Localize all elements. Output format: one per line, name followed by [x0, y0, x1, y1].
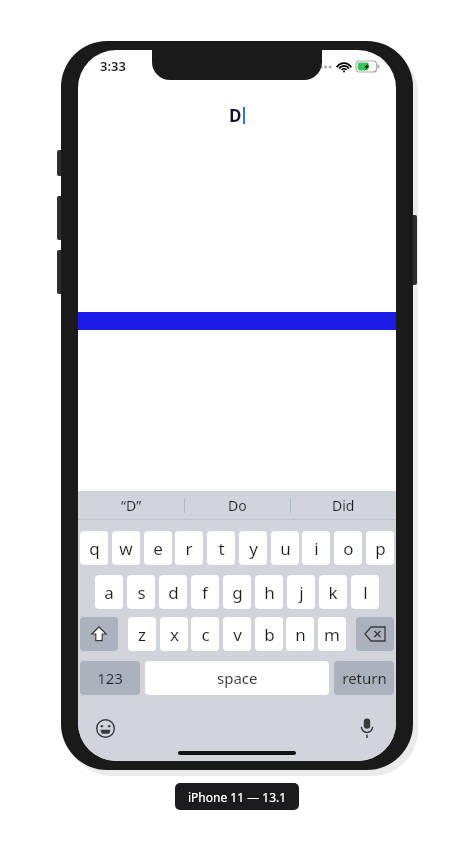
button[interactable]: y — [239, 531, 267, 565]
button[interactable]: m — [318, 617, 346, 651]
staticText: q — [89, 537, 100, 560]
button[interactable]: u — [271, 531, 299, 565]
staticText: space — [217, 668, 258, 688]
staticText: c — [201, 623, 210, 646]
button[interactable]: i — [302, 531, 330, 565]
button[interactable]: Dictation — [352, 713, 382, 743]
staticText: return — [342, 668, 387, 688]
staticText: v — [233, 623, 242, 646]
staticText: 123 — [97, 668, 123, 688]
button[interactable]: o — [334, 531, 362, 565]
staticText: x — [170, 623, 179, 646]
button[interactable]: Emoji — [90, 713, 120, 743]
button[interactable]: Did — [291, 491, 396, 520]
staticText: i — [314, 537, 319, 560]
button[interactable]: Do — [185, 491, 290, 520]
staticText: r — [185, 537, 193, 560]
staticText: k — [328, 581, 338, 604]
button[interactable]: x — [160, 617, 188, 651]
button[interactable]: “D” — [78, 491, 184, 520]
button[interactable]: a — [95, 575, 123, 609]
button[interactable]: g — [223, 575, 251, 609]
staticText: “D” — [121, 496, 142, 515]
button[interactable]: d — [159, 575, 187, 609]
staticText: n — [295, 623, 306, 646]
staticText: m — [324, 623, 340, 646]
staticText: iPhone 11 — 13.1 — [188, 789, 287, 805]
button[interactable]: s — [127, 575, 155, 609]
button[interactable]: b — [255, 617, 283, 651]
button[interactable]: space — [145, 661, 329, 695]
button[interactable]: Shift — [80, 617, 118, 651]
staticText: f — [202, 581, 208, 604]
button[interactable]: f — [191, 575, 219, 609]
button[interactable]: p — [366, 531, 394, 565]
staticText: e — [153, 537, 163, 560]
staticText: Do — [228, 496, 247, 515]
staticText: s — [137, 581, 146, 604]
button[interactable]: l — [351, 575, 379, 609]
staticText: u — [280, 537, 291, 560]
button[interactable]: z — [128, 617, 156, 651]
staticText: l — [363, 581, 368, 604]
staticText: a — [104, 581, 114, 604]
button[interactable]: h — [255, 575, 283, 609]
button[interactable]: 123 — [80, 661, 140, 695]
button[interactable]: n — [286, 617, 314, 651]
button[interactable]: Delete — [356, 617, 394, 651]
staticText: w — [119, 537, 133, 560]
button[interactable]: t — [207, 531, 235, 565]
staticText: z — [138, 623, 146, 646]
button[interactable]: return — [334, 661, 394, 695]
staticText: 3:33 — [100, 57, 126, 75]
staticText: D — [229, 104, 242, 127]
button[interactable]: k — [319, 575, 347, 609]
button[interactable]: r — [175, 531, 203, 565]
button[interactable]: j — [287, 575, 315, 609]
staticText: b — [264, 623, 275, 646]
staticText: d — [168, 581, 179, 604]
staticText: t — [218, 537, 225, 560]
staticText: p — [375, 537, 386, 560]
button[interactable]: v — [223, 617, 251, 651]
staticText: h — [264, 581, 275, 604]
button[interactable]: e — [144, 531, 172, 565]
button[interactable]: c — [191, 617, 219, 651]
staticText: y — [249, 537, 258, 560]
staticText: o — [343, 537, 354, 560]
button[interactable]: q — [80, 531, 108, 565]
staticText: j — [299, 581, 304, 604]
staticText: Did — [332, 496, 355, 515]
staticText: g — [232, 581, 243, 604]
button[interactable]: w — [112, 531, 140, 565]
